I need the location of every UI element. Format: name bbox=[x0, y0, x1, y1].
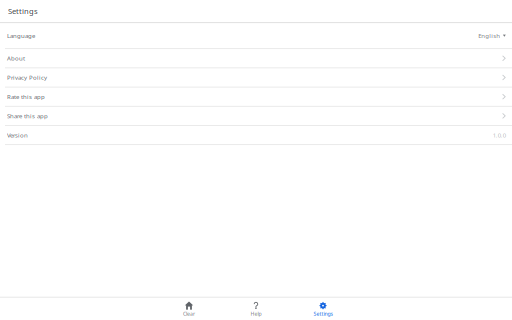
staticText: English bbox=[478, 32, 500, 40]
button[interactable]: About bbox=[0, 49, 512, 68]
button[interactable]: Clear bbox=[155, 297, 222, 320]
staticText: Clear bbox=[183, 310, 195, 317]
staticText: Language bbox=[7, 32, 35, 40]
button[interactable]: Privacy Policy bbox=[0, 68, 512, 87]
button[interactable]: Version bbox=[0, 126, 512, 145]
staticText: Rate this app bbox=[7, 93, 45, 101]
staticText: 1.0.0 bbox=[493, 131, 506, 139]
button[interactable]: Language bbox=[0, 23, 512, 49]
staticText: Version bbox=[7, 131, 28, 139]
staticText: Privacy Policy bbox=[7, 73, 47, 82]
staticText: Settings bbox=[8, 6, 38, 16]
staticText: Share this app bbox=[7, 112, 48, 120]
button[interactable]: Help bbox=[222, 297, 289, 320]
staticText: Settings bbox=[313, 310, 332, 317]
button[interactable]: Settings bbox=[289, 297, 356, 320]
button[interactable]: Rate this app bbox=[0, 87, 512, 107]
button[interactable]: Share this app bbox=[0, 107, 512, 126]
staticText: Help bbox=[250, 310, 261, 317]
staticText: About bbox=[7, 54, 25, 62]
